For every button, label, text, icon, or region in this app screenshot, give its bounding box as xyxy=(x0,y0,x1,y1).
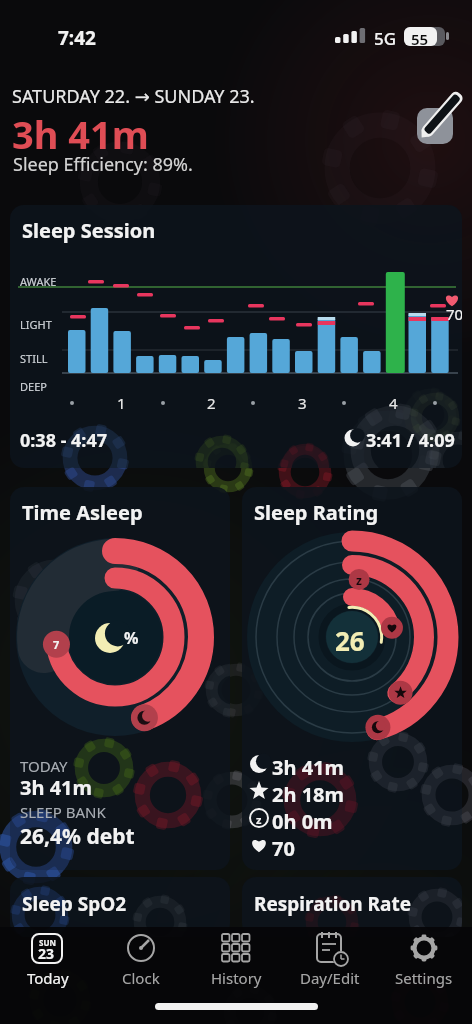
button[interactable]: 7 xyxy=(10,487,230,870)
staticText: 26 xyxy=(335,623,365,658)
button[interactable]: z xyxy=(242,487,462,870)
staticText: 2h 18m xyxy=(272,781,345,808)
staticText: 7:42 xyxy=(58,25,96,51)
staticText: Day/Edit xyxy=(300,968,360,988)
button[interactable] xyxy=(417,108,453,144)
staticText: DEEP xyxy=(20,379,47,394)
staticText: 7 xyxy=(53,637,60,652)
staticText: 3h 41m xyxy=(20,774,93,801)
staticText: 26,4% debt xyxy=(20,822,135,851)
staticText: 70 xyxy=(272,835,295,862)
staticText: Sleep Rating xyxy=(254,499,379,526)
staticText: % xyxy=(124,627,139,649)
staticText: SLEEP BANK xyxy=(20,802,106,822)
staticText: Sleep Session xyxy=(22,217,156,244)
staticText: 4 xyxy=(389,393,398,413)
button[interactable] xyxy=(300,929,358,989)
staticText: LIGHT xyxy=(20,317,52,332)
staticText: 1 xyxy=(117,393,126,413)
staticText: SUN xyxy=(39,937,56,948)
staticText: History xyxy=(211,968,262,988)
staticText: Today xyxy=(27,968,69,988)
staticText: 3 xyxy=(298,393,307,413)
staticText: SATURDAY 22. → SUNDAY 23. xyxy=(12,84,255,109)
staticText: z xyxy=(256,812,262,827)
staticText: 23 xyxy=(38,944,55,963)
staticText: Clock xyxy=(122,968,160,988)
button[interactable]: Respiration Rate xyxy=(242,877,462,937)
staticText: AWAKE xyxy=(20,274,57,289)
button[interactable]: Sleep SpO2 xyxy=(10,877,230,937)
button[interactable] xyxy=(206,929,264,989)
button[interactable] xyxy=(112,929,170,989)
staticText: Sleep Efficiency: 89%. xyxy=(13,152,193,177)
staticText: STILL xyxy=(20,351,48,366)
button[interactable]: Sleep Session xyxy=(10,205,462,468)
staticText: Respiration Rate xyxy=(254,891,412,917)
staticText: 3:41 / 4:09 xyxy=(366,428,455,453)
staticText: 0:38 - 4:47 xyxy=(20,428,108,453)
button[interactable] xyxy=(18,929,76,989)
button[interactable] xyxy=(394,929,452,989)
staticText: 0h 0m xyxy=(272,808,333,835)
staticText: 3h 41m xyxy=(272,754,345,781)
staticText: 3h 41m xyxy=(12,108,149,160)
staticText: z xyxy=(356,572,362,588)
staticText: Time Asleep xyxy=(22,499,143,526)
staticText: 55 xyxy=(411,29,429,49)
staticText: 70 xyxy=(446,304,462,324)
staticText: Settings xyxy=(395,968,453,988)
staticText: Sleep SpO2 xyxy=(22,891,127,917)
staticText: 5G xyxy=(374,27,397,50)
staticText: TODAY xyxy=(20,756,68,776)
staticText: 2 xyxy=(207,393,216,413)
